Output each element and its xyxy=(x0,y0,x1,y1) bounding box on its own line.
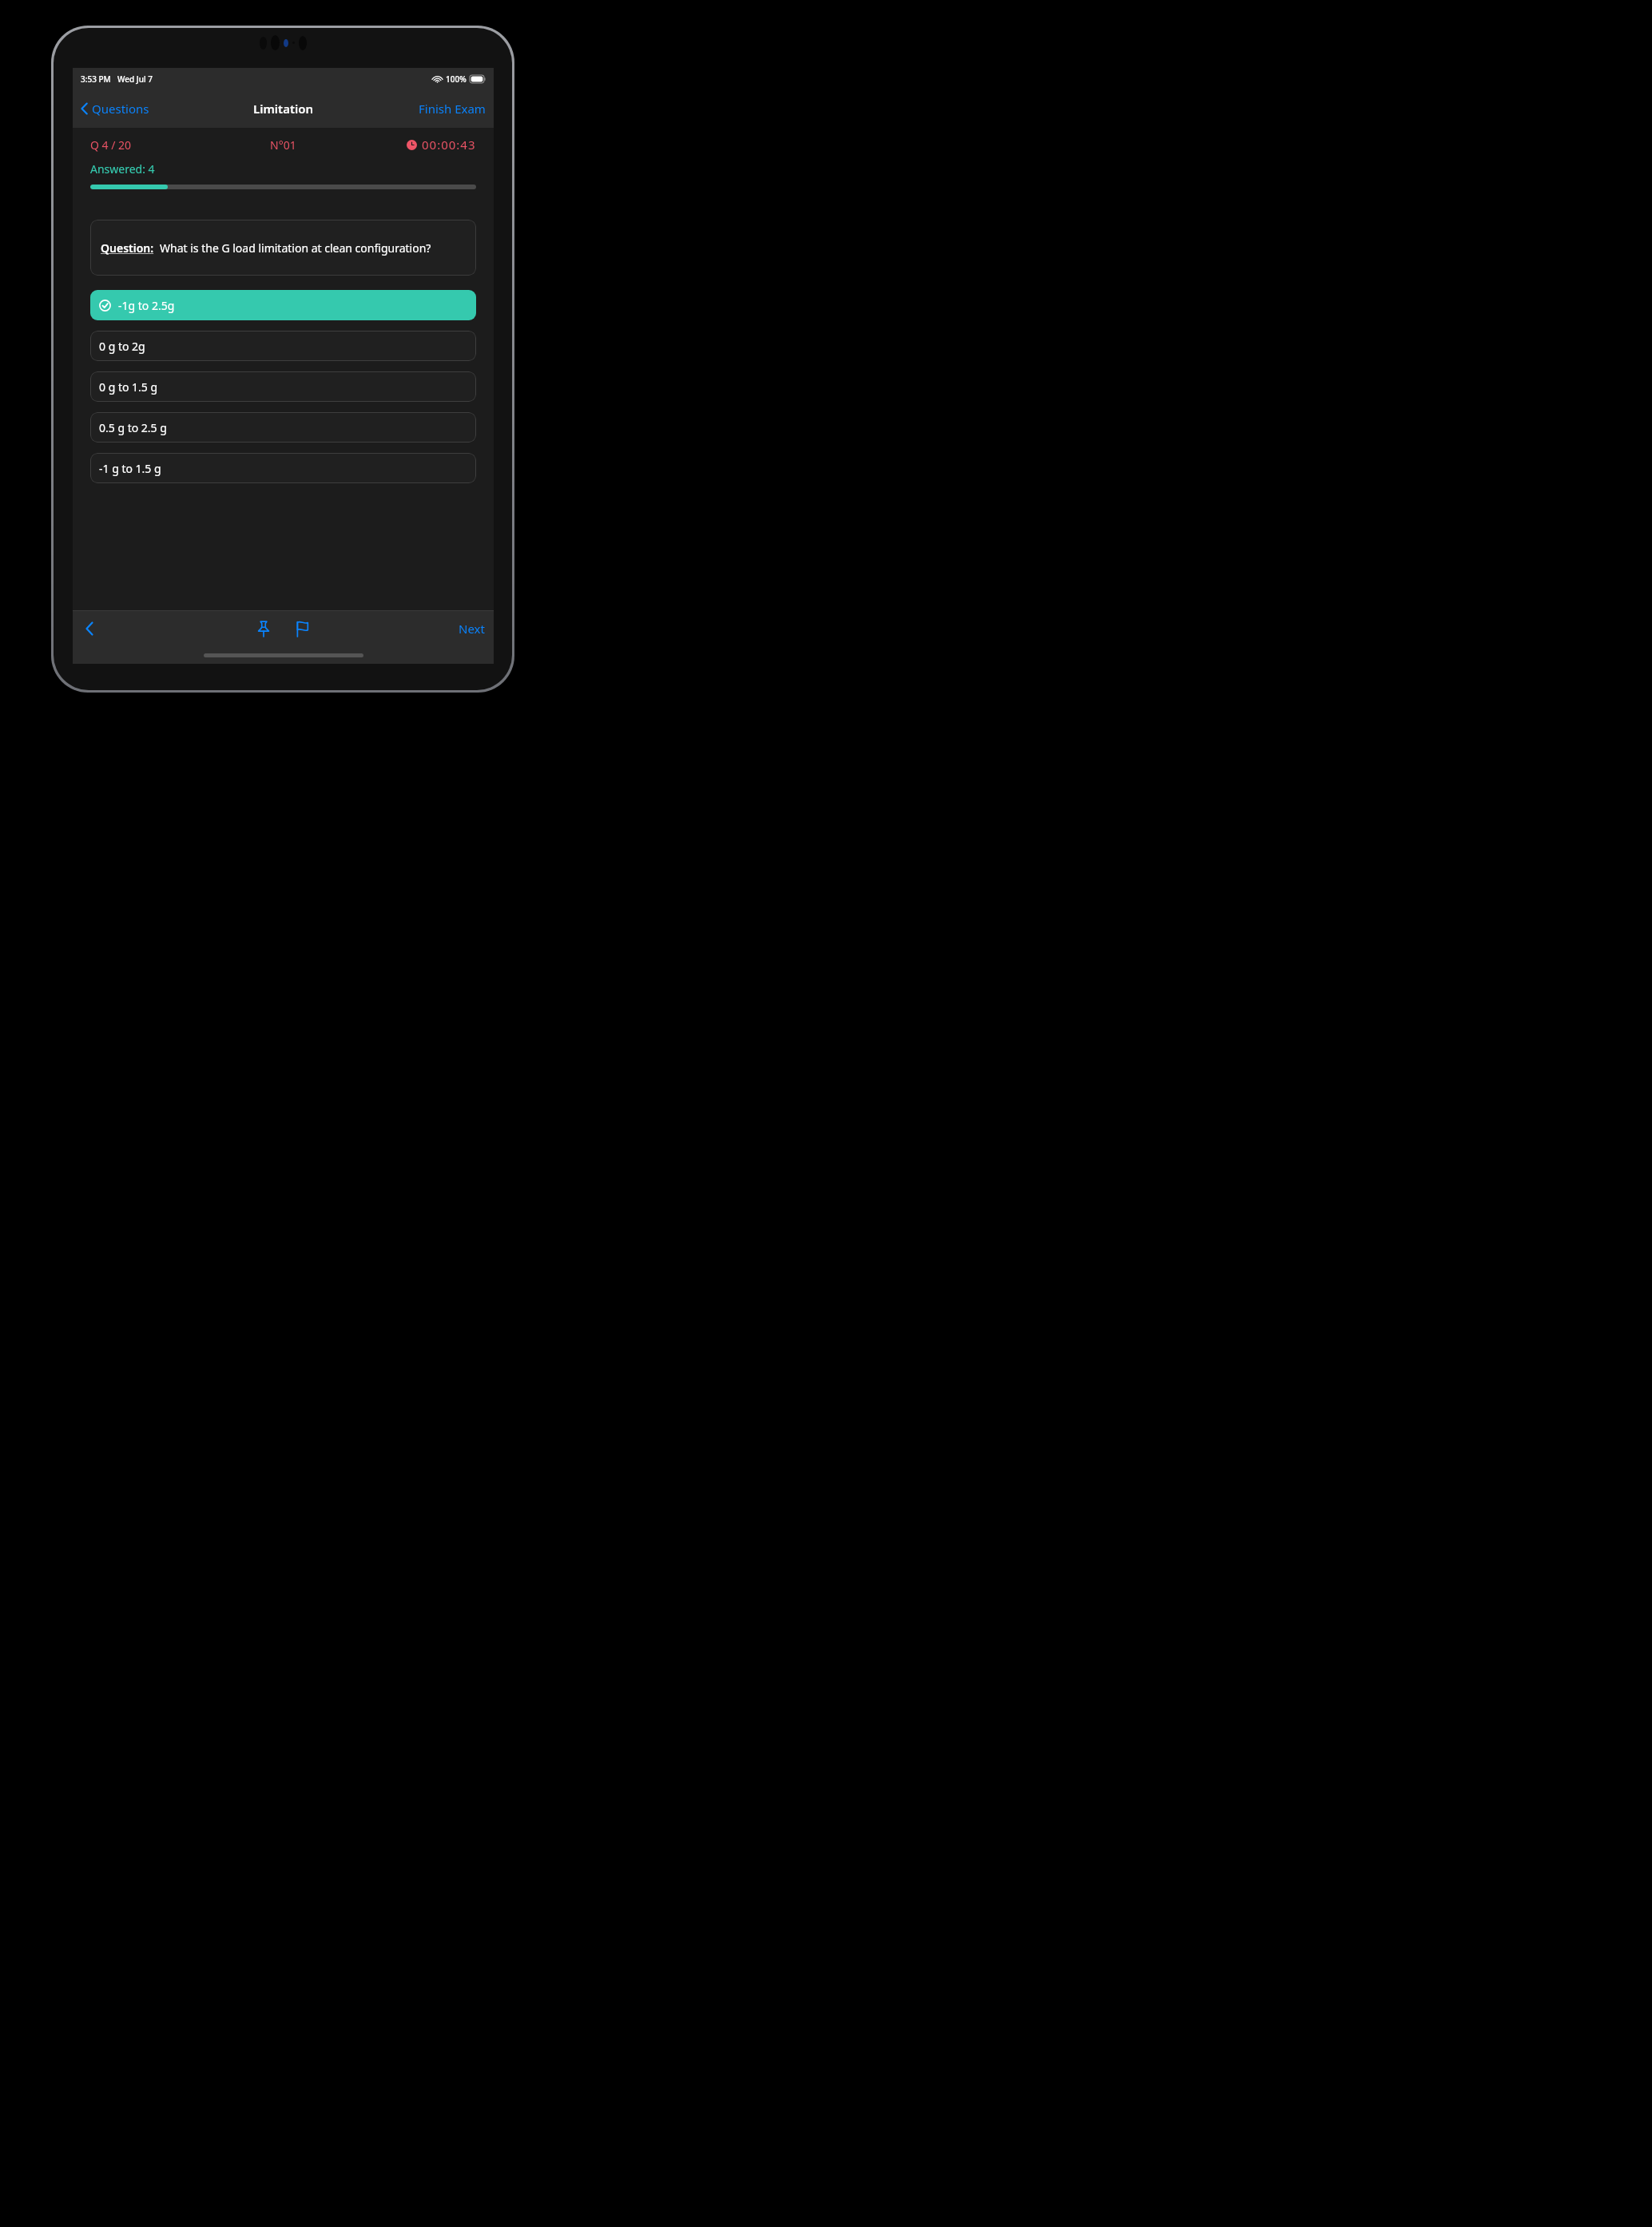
staticText: Wed Jul 7 xyxy=(117,73,153,85)
button[interactable]: Questions xyxy=(77,97,153,120)
button[interactable]: Pin question xyxy=(253,616,274,641)
button[interactable]: 0 g to 1.5 g xyxy=(90,371,476,402)
button[interactable]: 0 g to 2g xyxy=(90,331,476,361)
staticText: What is the G load limitation at clean c… xyxy=(160,240,431,256)
staticText: Limitation xyxy=(253,101,314,117)
staticText: N°01 xyxy=(270,137,296,153)
button[interactable]: 0.5 g to 2.5 g xyxy=(90,412,476,443)
staticText: Answered: 4 xyxy=(90,161,155,177)
staticText: Next xyxy=(459,621,485,637)
button[interactable]: Question: xyxy=(90,220,476,276)
button[interactable]: Next xyxy=(455,617,489,640)
staticText: -1g to 2.5g xyxy=(118,298,175,313)
staticText: 0.5 g to 2.5 g xyxy=(99,420,167,435)
button[interactable]: Finish Exam xyxy=(415,97,489,120)
staticText: Question: xyxy=(101,240,154,256)
staticText: 3:53 PM xyxy=(81,73,111,85)
staticText: 0 g to 1.5 g xyxy=(99,379,158,395)
staticText: 100% xyxy=(446,73,467,85)
button[interactable]: -1 g to 1.5 g xyxy=(90,453,476,483)
button[interactable]: Flag question xyxy=(292,617,313,641)
button[interactable]: Previous question xyxy=(79,615,100,642)
staticText: -1 g to 1.5 g xyxy=(99,461,161,476)
staticText: 00:00:43 xyxy=(422,137,476,153)
staticText: Questions xyxy=(92,101,149,117)
staticText: Q 4 / 20 xyxy=(90,137,132,153)
button[interactable]: -1g to 2.5g xyxy=(90,290,476,320)
staticText: 0 g to 2g xyxy=(99,339,145,354)
staticText: Finish Exam xyxy=(419,101,486,117)
